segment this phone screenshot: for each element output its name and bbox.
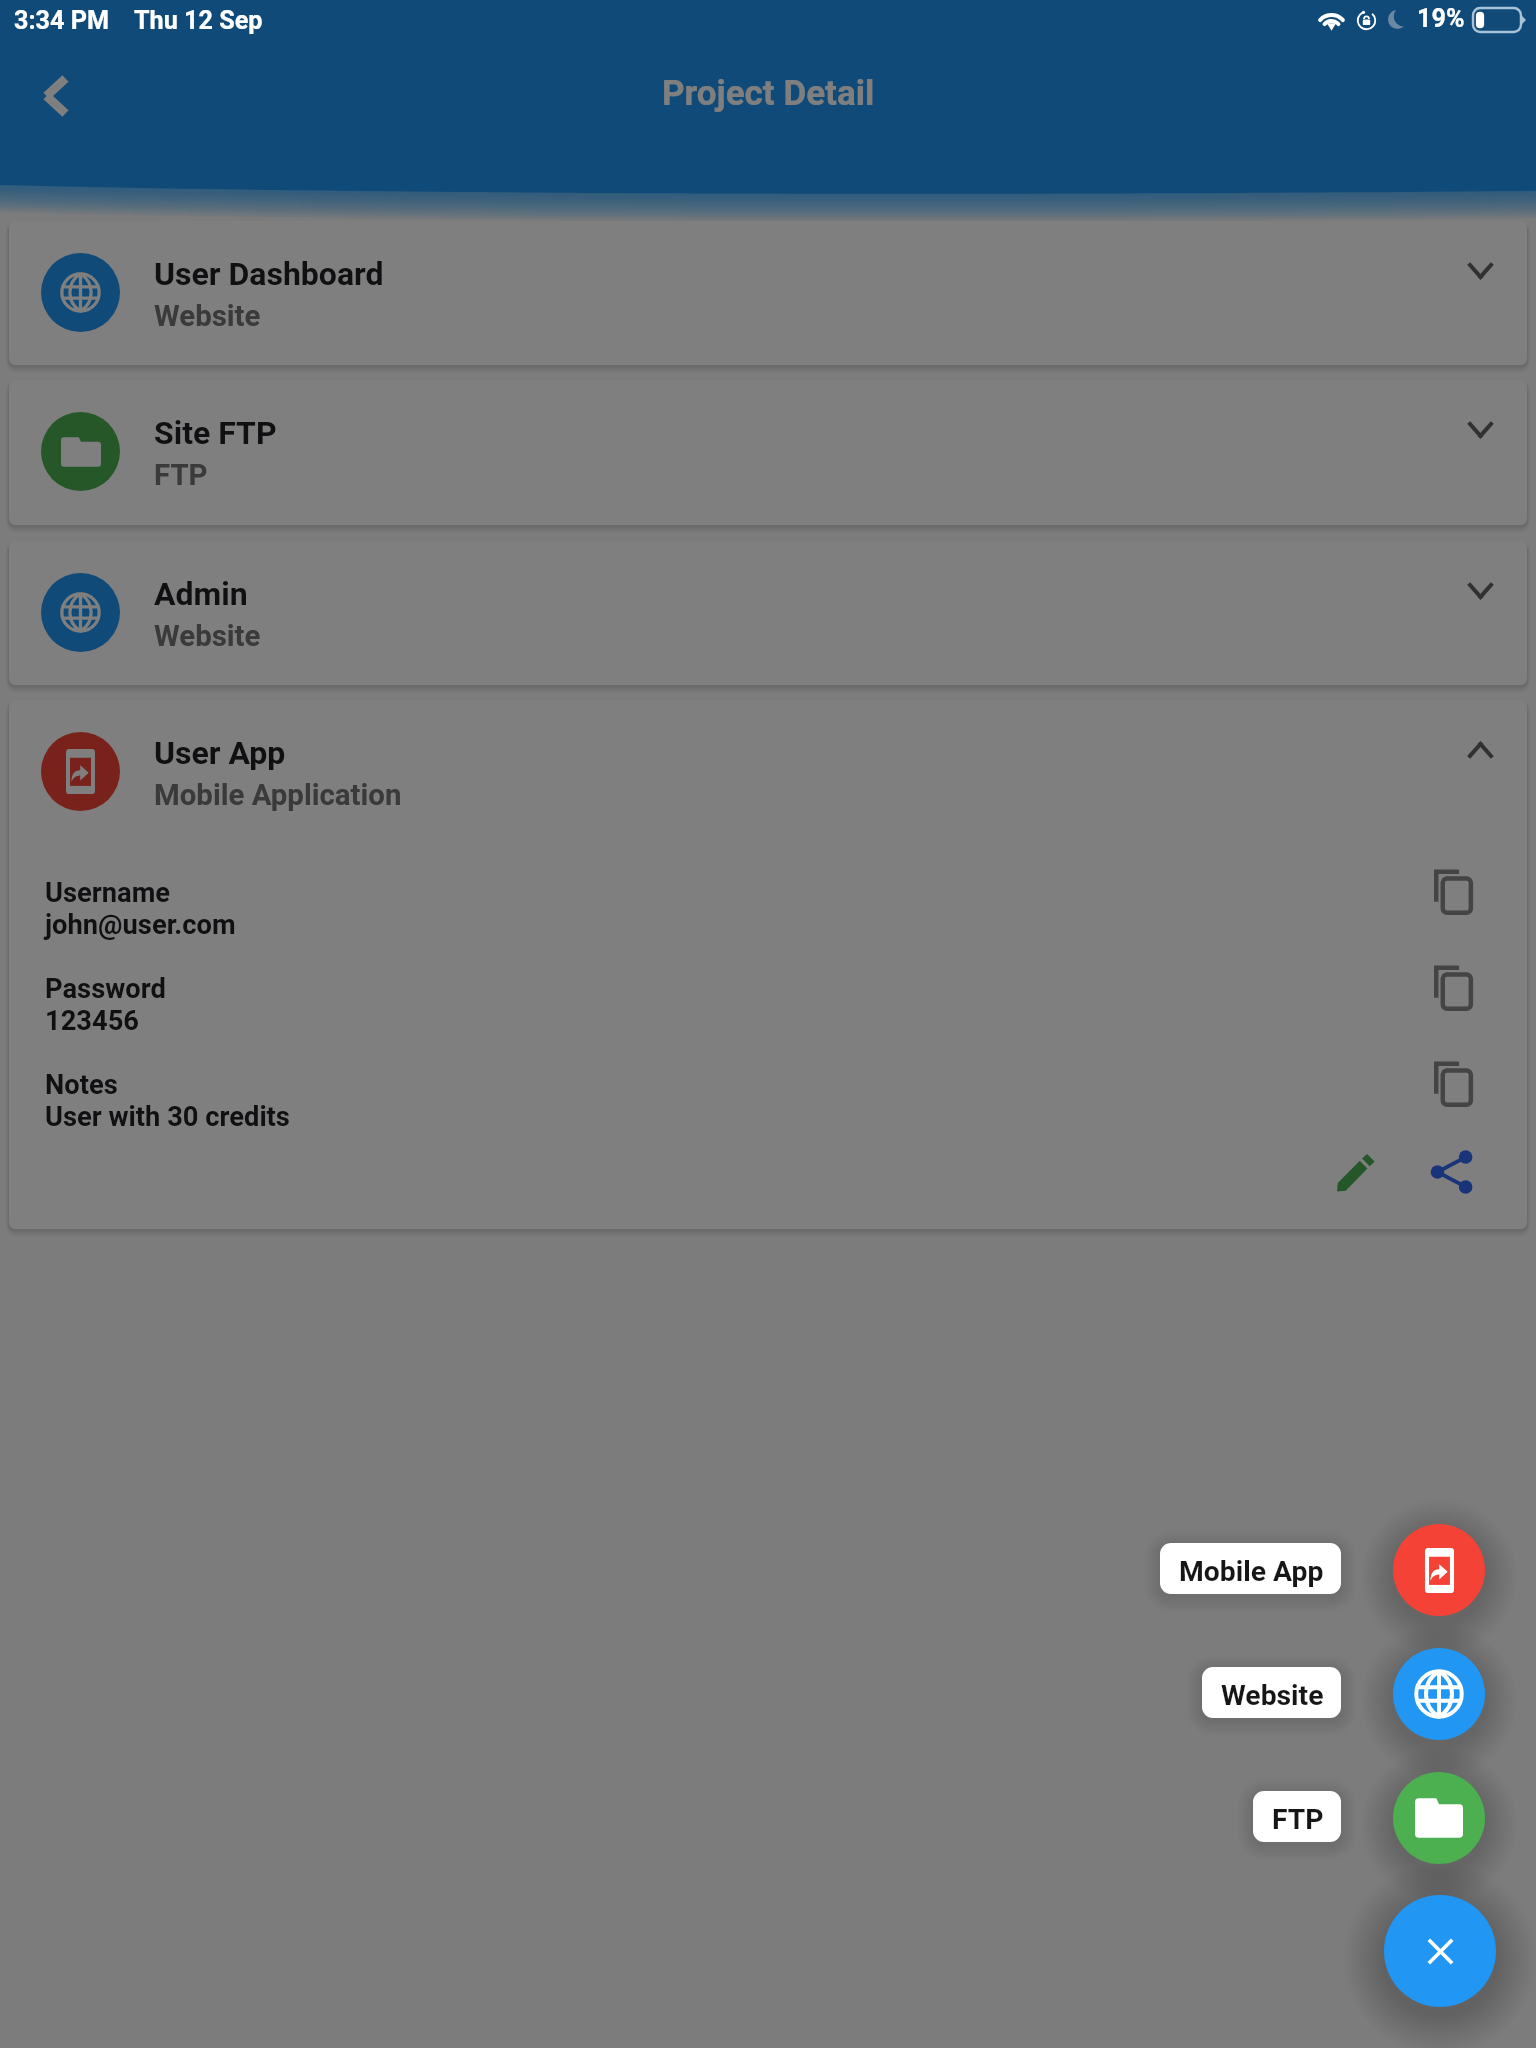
- button[interactable]: Copy Username: [1415, 853, 1491, 929]
- button[interactable]: Expand: [1436, 227, 1524, 315]
- staticText: User with 30 credits: [45, 1101, 290, 1133]
- button[interactable]: Mobile App: [1393, 1524, 1485, 1616]
- staticText: FTP: [1272, 1803, 1324, 1836]
- button[interactable]: Site FTP: [9, 380, 1527, 524]
- staticText: User Dashboard: [154, 255, 384, 293]
- staticText: Mobile Application: [154, 778, 402, 812]
- staticText: User App: [154, 734, 286, 772]
- button[interactable]: Admin: [9, 541, 1527, 685]
- staticText: Username: [45, 877, 171, 909]
- button[interactable]: FTP: [1393, 1772, 1485, 1864]
- button[interactable]: Website: [1393, 1648, 1485, 1740]
- staticText: Admin: [154, 575, 248, 613]
- button[interactable]: User App: [9, 700, 1527, 844]
- button[interactable]: Website: [1202, 1667, 1341, 1718]
- staticText: 19%: [1417, 4, 1465, 34]
- button[interactable]: Expand: [1436, 547, 1524, 635]
- staticText: Password: [45, 973, 166, 1005]
- button[interactable]: Edit: [1319, 1136, 1393, 1210]
- button[interactable]: Back: [23, 63, 89, 129]
- staticText: Notes: [45, 1069, 118, 1101]
- staticText: 123456: [45, 1005, 139, 1037]
- staticText: Mobile App: [1179, 1555, 1324, 1588]
- button[interactable]: Mobile App: [1160, 1543, 1341, 1594]
- button[interactable]: Share: [1415, 1135, 1489, 1209]
- staticText: FTP: [154, 458, 208, 492]
- button[interactable]: Expand: [1436, 386, 1524, 474]
- staticText: 3:34 PM: [14, 6, 110, 36]
- button[interactable]: User Dashboard: [9, 221, 1527, 365]
- button[interactable]: Close menu: [1384, 1895, 1496, 2007]
- button[interactable]: Copy Notes: [1415, 1045, 1491, 1121]
- button[interactable]: Collapse: [1436, 706, 1524, 794]
- staticText: Website: [1221, 1679, 1324, 1712]
- button[interactable]: Copy Password: [1415, 949, 1491, 1025]
- staticText: Website: [154, 619, 261, 653]
- staticText: Project Detail: [662, 73, 875, 114]
- staticText: Website: [154, 299, 261, 333]
- staticText: Thu 12 Sep: [134, 6, 263, 36]
- staticText: Site FTP: [154, 414, 277, 452]
- button[interactable]: FTP: [1253, 1791, 1341, 1842]
- staticText: john@user.com: [45, 909, 236, 941]
